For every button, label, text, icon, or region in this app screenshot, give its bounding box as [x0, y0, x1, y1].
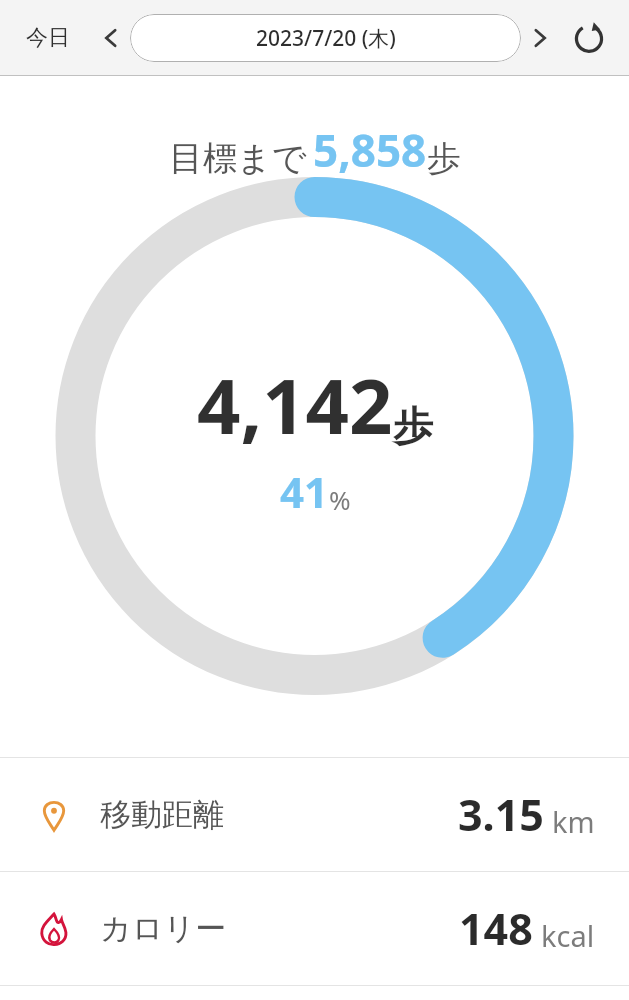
- staticText: km: [552, 802, 595, 841]
- button[interactable]: Refresh: [567, 16, 611, 60]
- staticText: 2023/7/20 (木): [256, 24, 396, 53]
- staticText: 148: [459, 899, 533, 958]
- staticText: %: [329, 482, 351, 517]
- button[interactable]: Next day: [523, 21, 557, 55]
- button[interactable]: 今日: [22, 20, 74, 56]
- staticText: kcal: [541, 916, 595, 955]
- button[interactable]: Previous day: [94, 21, 128, 55]
- button[interactable]: 移動距離: [0, 758, 629, 871]
- button[interactable]: カロリー: [0, 872, 629, 985]
- staticText: 移動距離: [100, 795, 224, 834]
- staticText: 歩: [393, 401, 433, 451]
- staticText: 4,142: [197, 353, 393, 457]
- staticText: カロリー: [100, 909, 227, 948]
- staticText: 41: [280, 463, 329, 520]
- button[interactable]: 2023/7/20 (木): [130, 14, 521, 62]
- staticText: 今日: [26, 24, 70, 52]
- staticText: 歩: [427, 137, 461, 180]
- staticText: 3.15: [458, 785, 544, 844]
- staticText: 5,858: [313, 120, 427, 180]
- staticText: 目標まで: [169, 137, 307, 180]
